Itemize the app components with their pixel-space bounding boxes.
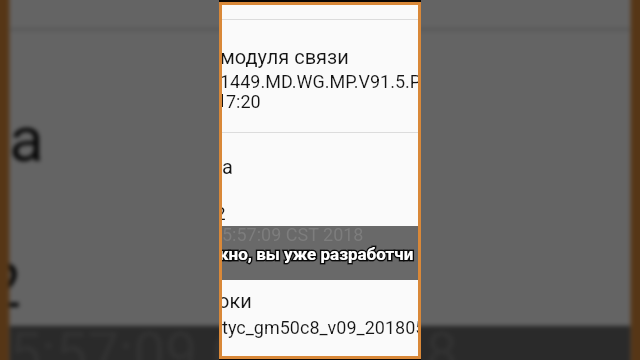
staticText: кно, вы уже разработчи — [222, 244, 414, 264]
staticText: кно, вы уже разработчи — [222, 244, 414, 264]
button[interactable]: оки — [222, 280, 418, 356]
button[interactable]: a — [9, 31, 631, 326]
staticText: 5:57:09 CST 2018 — [222, 226, 364, 245]
button[interactable]: модуля связи — [219, 0, 421, 360]
staticText: 2 — [222, 202, 226, 224]
button[interactable]: модуля связи — [9, 0, 631, 28]
staticText: 7:20 — [226, 91, 261, 112]
staticText: 5:57:09 CST 2018 — [9, 326, 459, 360]
staticText: модуля связи — [222, 45, 349, 68]
staticText: оки — [222, 289, 252, 312]
button[interactable]: a — [222, 133, 418, 226]
button[interactable]: модуля связи — [222, 20, 418, 132]
staticText: tyc_gm50c8_v09_201805 — [222, 317, 418, 338]
staticText: a — [222, 155, 233, 178]
staticText: a — [9, 101, 44, 174]
staticText: 1449.MD.WG.MP.V91.5.P1 — [222, 71, 418, 92]
staticText: 2 — [9, 250, 22, 319]
